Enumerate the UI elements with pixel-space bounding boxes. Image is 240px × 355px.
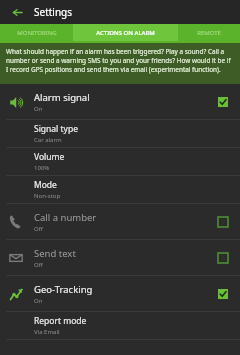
- staticText: Off: [34, 225, 43, 233]
- button[interactable]: ACTIONS ON ALARM: [73, 24, 178, 41]
- button[interactable]: MONITORING: [0, 24, 73, 41]
- staticText: Car alarm: [34, 136, 62, 144]
- button[interactable]: Disabled: [214, 249, 232, 267]
- button[interactable]: Signal type: [0, 120, 240, 147]
- staticText: Off: [34, 261, 43, 269]
- button[interactable]: REMOTE: [178, 24, 240, 41]
- staticText: Signal type: [34, 123, 78, 135]
- staticText: Non-stop: [34, 192, 61, 200]
- button[interactable]: Disabled: [214, 213, 232, 231]
- button[interactable]: Enabled: [214, 285, 232, 303]
- staticText: On: [34, 105, 43, 113]
- staticText: ACTIONS ON ALARM: [96, 29, 155, 37]
- staticText: REMOTE: [197, 29, 221, 37]
- button[interactable]: Mode: [0, 176, 240, 203]
- staticText: Volume: [34, 151, 65, 163]
- staticText: Mode: [34, 179, 57, 191]
- staticText: On: [34, 297, 43, 305]
- staticText: What should happen if an alarm has been …: [6, 47, 234, 74]
- button[interactable]: Volume: [0, 148, 240, 175]
- staticText: Alarm signal: [34, 91, 90, 104]
- button[interactable]: Geo-Tracking: [0, 276, 240, 311]
- button[interactable]: Send text: [0, 240, 240, 275]
- staticText: MONITORING: [17, 29, 57, 37]
- staticText: Via Email: [34, 328, 60, 336]
- button[interactable]: Back: [6, 1, 28, 23]
- staticText: Call a number: [34, 211, 97, 224]
- staticText: Geo-Tracking: [34, 283, 93, 296]
- button[interactable]: Enabled: [214, 93, 232, 111]
- staticText: Report mode: [34, 315, 87, 327]
- staticText: Send text: [34, 247, 76, 260]
- staticText: Settings: [34, 5, 73, 19]
- button[interactable]: Call a number: [0, 204, 240, 239]
- staticText: 100%: [34, 164, 50, 172]
- button[interactable]: Report mode: [0, 312, 240, 339]
- button[interactable]: Alarm signal: [0, 84, 240, 119]
